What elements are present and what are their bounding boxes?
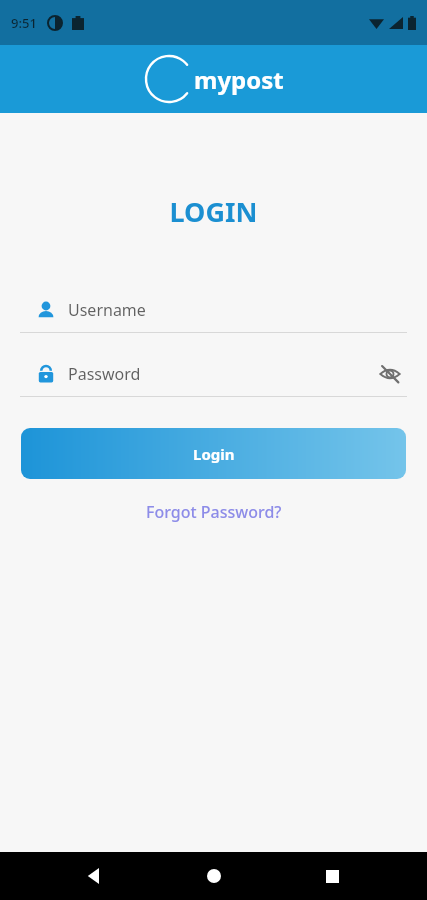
staticText: Login: [193, 444, 235, 464]
button[interactable]: Back: [71, 852, 119, 900]
staticText: mypost: [194, 63, 284, 96]
button[interactable]: Login: [21, 428, 406, 479]
staticText: Username: [68, 299, 146, 321]
button[interactable]: Show password: [373, 357, 407, 391]
button[interactable]: Forgot Password?: [0, 501, 427, 523]
staticText: LOGIN: [0, 193, 427, 230]
button[interactable]: Home: [190, 852, 238, 900]
staticText: Forgot Password?: [146, 501, 282, 523]
button[interactable]: Username: [20, 287, 407, 332]
staticText: Password: [68, 363, 373, 385]
staticText: 9:51: [11, 14, 37, 32]
button[interactable]: Password: [20, 351, 407, 396]
button[interactable]: Recent apps: [308, 852, 356, 900]
